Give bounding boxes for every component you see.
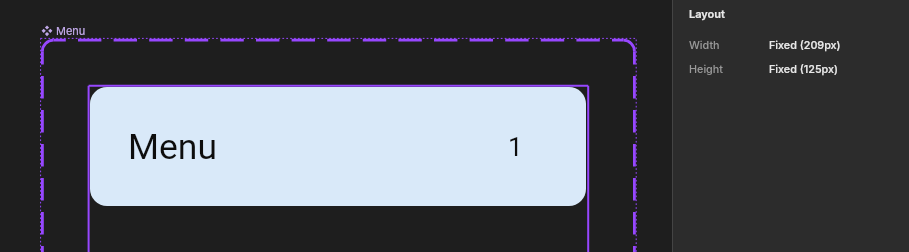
staticText: Menu bbox=[128, 126, 217, 168]
staticText: Fixed (209px) bbox=[769, 39, 841, 52]
button[interactable]: Layout bbox=[673, 2, 909, 24]
staticText: Layout bbox=[689, 7, 725, 20]
staticText: 1 bbox=[508, 132, 523, 162]
button[interactable]: Menu component bbox=[40, 24, 86, 37]
staticText: Menu bbox=[56, 24, 86, 37]
button[interactable]: Width bbox=[673, 33, 909, 55]
button[interactable]: Height bbox=[673, 57, 909, 79]
staticText: Fixed (125px) bbox=[769, 63, 838, 76]
staticText: Width bbox=[689, 39, 720, 52]
button[interactable]: Menu bbox=[90, 87, 586, 206]
staticText: Height bbox=[689, 63, 723, 76]
